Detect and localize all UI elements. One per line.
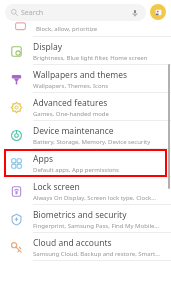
button[interactable]: Lock screen (0, 177, 171, 205)
button[interactable]: Advanced features (0, 93, 171, 121)
staticText: Block, allow, prioritize (36, 25, 98, 33)
button[interactable] (0, 24, 171, 37)
staticText: Samsung Cloud, Backup and restore, Smart… (33, 250, 160, 258)
button[interactable]: Display (0, 37, 171, 65)
staticText: Fingerprint, Samsung Pass, Find My Mobil… (33, 222, 160, 230)
staticText: Biometrics and security (33, 209, 127, 221)
staticText: Search (21, 8, 44, 18)
staticText: Wallpapers, Themes, Icons (33, 82, 109, 90)
button[interactable]: Wallpapers and themes (0, 65, 171, 93)
staticText: Lock screen (33, 181, 80, 193)
staticText: Cloud and accounts (33, 237, 112, 249)
button[interactable]: Search (5, 4, 146, 21)
staticText: Advanced features (33, 97, 108, 109)
button[interactable]: Account (150, 4, 166, 20)
staticText: Display (33, 41, 62, 53)
button[interactable]: Voice search (130, 8, 140, 18)
staticText: Default apps, App permissions (33, 166, 119, 174)
staticText: Always On Display, Screen lock type, Clo… (33, 194, 156, 202)
staticText: Brightness, Blue light filter, Home scre… (33, 54, 148, 62)
button[interactable]: Apps (0, 149, 171, 177)
button[interactable]: Device maintenance (0, 121, 171, 149)
staticText: Apps (33, 153, 53, 165)
staticText: Wallpapers and themes (33, 69, 128, 81)
staticText: Device maintenance (33, 125, 114, 137)
staticText: Games, One-handed mode (33, 110, 109, 118)
button[interactable]: Cloud and accounts (0, 233, 171, 261)
staticText: Battery, Storage, Memory, Device securit… (33, 138, 151, 146)
button[interactable]: Biometrics and security (0, 205, 171, 233)
